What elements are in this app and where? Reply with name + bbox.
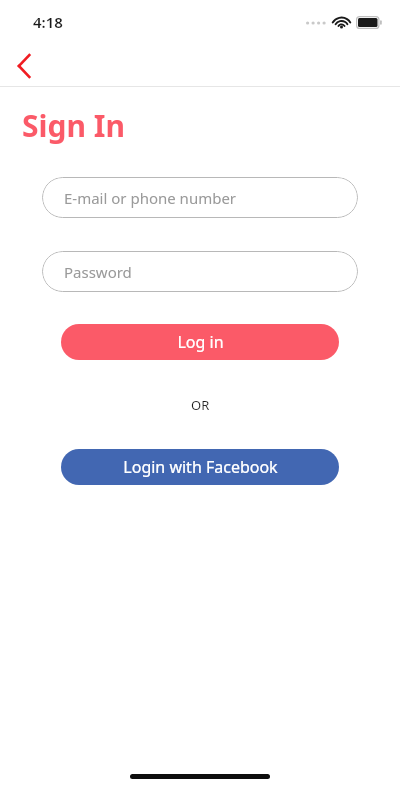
button[interactable]: E-mail or phone number: [42, 177, 358, 218]
button[interactable]: Password: [42, 251, 358, 292]
staticText: OR: [191, 396, 210, 414]
staticText: Sign In: [22, 105, 125, 146]
staticText: Password: [64, 262, 132, 282]
button[interactable]: Login with Facebook: [61, 449, 339, 485]
staticText: E-mail or phone number: [64, 188, 237, 208]
staticText: 4:18: [33, 12, 63, 32]
button[interactable]: Back: [6, 48, 42, 84]
staticText: Login with Facebook: [123, 456, 278, 478]
staticText: Log in: [177, 331, 224, 353]
button[interactable]: Log in: [61, 324, 339, 360]
